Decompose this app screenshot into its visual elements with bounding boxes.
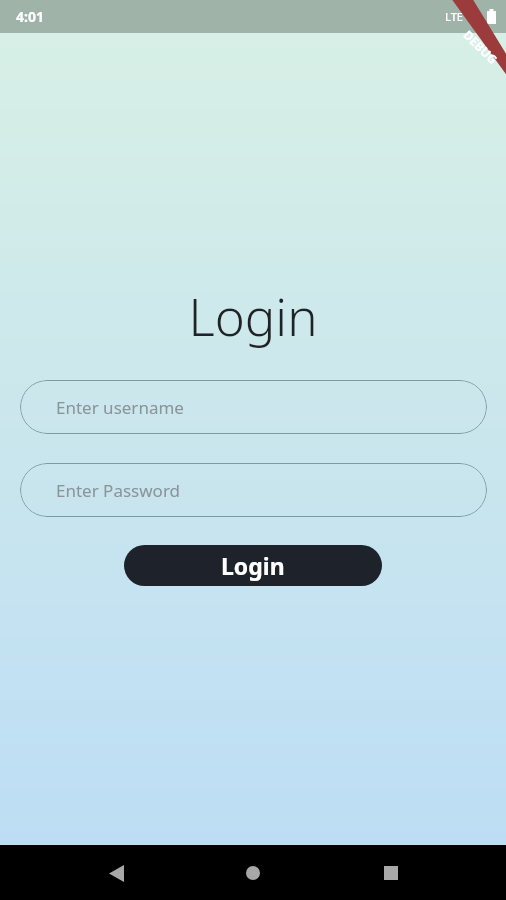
- button[interactable]: Home: [231, 851, 275, 895]
- staticText: DEBUG: [460, 26, 501, 67]
- button[interactable]: Enter Password: [20, 463, 487, 517]
- staticText: Login: [0, 281, 506, 350]
- button[interactable]: Recent apps: [369, 851, 413, 895]
- staticText: Login: [221, 550, 285, 581]
- button[interactable]: Enter username: [20, 380, 487, 434]
- staticText: Enter username: [56, 396, 184, 419]
- staticText: LTE: [445, 9, 463, 24]
- staticText: 4:01: [16, 7, 44, 26]
- button[interactable]: Back: [94, 851, 138, 895]
- staticText: Enter Password: [56, 479, 181, 502]
- button[interactable]: Login: [124, 545, 382, 586]
